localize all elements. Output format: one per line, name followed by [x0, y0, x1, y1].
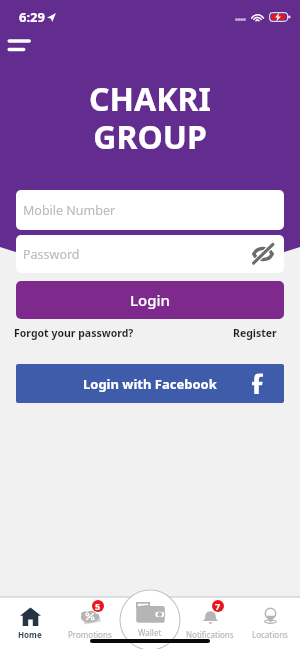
staticText: Locations [252, 629, 288, 640]
button[interactable]: 5 [60, 597, 120, 649]
button[interactable]: Home [0, 597, 60, 649]
staticText: 6:29 [19, 8, 45, 26]
staticText: Home [18, 629, 42, 640]
staticText: 7 [215, 600, 221, 612]
button[interactable]: Forgot your password? [14, 326, 134, 340]
button[interactable]: Wallet [120, 597, 180, 649]
button[interactable]: Login with Facebook [16, 364, 284, 403]
staticText: Promotions [68, 629, 112, 640]
staticText: Wallet [138, 627, 162, 638]
staticText: Register [233, 326, 277, 340]
staticText: Mobile Number [23, 202, 116, 219]
button[interactable]: 7 [180, 597, 240, 649]
button[interactable]: Login [16, 281, 284, 319]
staticText: CHAKRI GROUP [0, 77, 300, 158]
button[interactable]: Password [16, 235, 284, 273]
button[interactable]: Locations [240, 597, 300, 649]
button[interactable]: Mobile Number [16, 190, 284, 230]
button[interactable]: Menu [7, 37, 33, 57]
staticText: Login [130, 290, 170, 310]
staticText: 5 [95, 600, 101, 612]
staticText: Password [23, 246, 80, 263]
staticText: Forgot your password? [14, 326, 134, 340]
button[interactable]: Show password [251, 242, 275, 266]
button[interactable]: Register [233, 326, 277, 340]
staticText: Login with Facebook [83, 375, 217, 393]
staticText: Notifications [186, 629, 234, 640]
